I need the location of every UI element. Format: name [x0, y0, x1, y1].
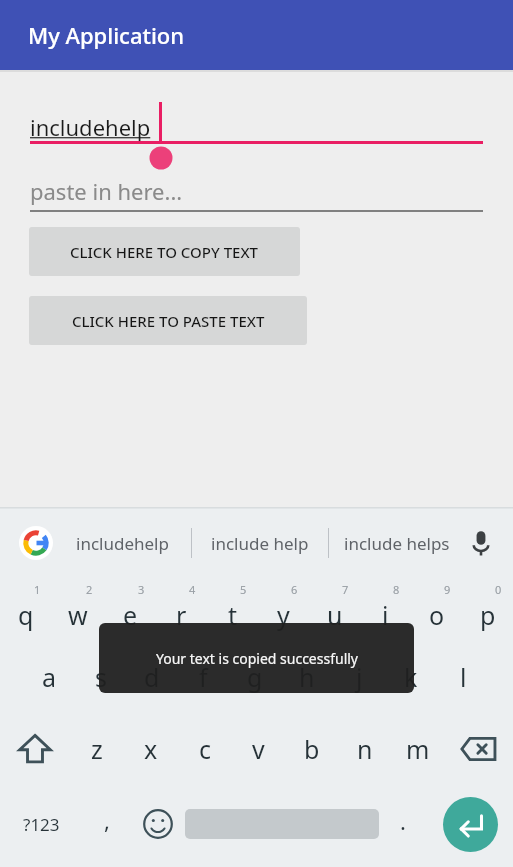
button[interactable]: 1	[0, 579, 52, 641]
button[interactable]: Emoji	[131, 785, 185, 863]
button[interactable]: c	[178, 713, 232, 785]
button[interactable]: .	[379, 785, 427, 863]
button[interactable]: 5	[207, 579, 258, 641]
button[interactable]: f	[177, 641, 229, 713]
button[interactable]: 9	[411, 579, 462, 641]
staticText: f	[199, 660, 208, 694]
staticText: ?123	[23, 813, 60, 836]
button[interactable]: Enter	[427, 785, 513, 863]
button[interactable]: j	[333, 641, 385, 713]
staticText: r	[176, 598, 187, 632]
staticText: CLICK HERE TO PASTE TEXT	[72, 311, 265, 331]
button[interactable]: g	[229, 641, 281, 713]
button[interactable]: d	[126, 641, 177, 713]
staticText: h	[299, 660, 315, 694]
staticText: includehelp	[30, 112, 151, 142]
staticText: includehelp	[76, 532, 169, 555]
button[interactable]: ,	[83, 785, 131, 863]
staticText: My Application	[28, 20, 185, 50]
staticText: j	[356, 660, 363, 694]
staticText: l	[460, 660, 467, 694]
button[interactable]: 8	[360, 579, 411, 641]
button[interactable]: ?123	[0, 785, 83, 863]
staticText: 9	[444, 582, 451, 597]
button[interactable]: Google	[18, 525, 54, 561]
button[interactable]: 7	[309, 579, 360, 641]
staticText: x	[144, 732, 158, 766]
staticText: m	[406, 732, 430, 766]
staticText: 7	[342, 582, 349, 597]
staticText: Your text is copied successfully	[156, 649, 358, 668]
button[interactable]: b	[285, 713, 338, 785]
staticText: d	[144, 660, 160, 694]
staticText: 4	[189, 582, 196, 597]
button[interactable]: Shift	[0, 713, 70, 785]
button[interactable]: k	[385, 641, 437, 713]
staticText: paste in here...	[30, 176, 183, 206]
staticText: .	[400, 806, 406, 836]
button[interactable]: CLICK HERE TO PASTE TEXT	[29, 296, 307, 345]
staticText: 1	[34, 582, 41, 597]
staticText: 5	[240, 582, 247, 597]
button[interactable]: l	[437, 641, 489, 713]
staticText: o	[429, 598, 445, 632]
staticText: i	[382, 598, 389, 632]
button[interactable]: 2	[52, 579, 104, 641]
button[interactable]: include helps	[329, 507, 465, 579]
button[interactable]: 3	[104, 579, 156, 641]
staticText: y	[277, 598, 290, 632]
staticText: ,	[104, 805, 110, 835]
button[interactable]: n	[338, 713, 391, 785]
button[interactable]: 6	[258, 579, 309, 641]
staticText: include help	[211, 532, 309, 555]
staticText: z	[91, 732, 103, 766]
staticText: a	[42, 660, 57, 694]
staticText: e	[123, 598, 138, 632]
button[interactable]: Backspace	[444, 713, 513, 785]
button[interactable]: include help	[192, 507, 328, 579]
staticText: 6	[291, 582, 298, 597]
staticText: include helps	[344, 532, 450, 555]
staticText: 2	[86, 582, 93, 597]
staticText: n	[357, 732, 373, 766]
button[interactable]: h	[281, 641, 333, 713]
staticText: s	[95, 660, 107, 694]
button[interactable]: CLICK HERE TO COPY TEXT	[29, 227, 300, 276]
staticText: q	[18, 598, 34, 632]
staticText: g	[247, 660, 263, 694]
button[interactable]: a	[24, 641, 75, 713]
button[interactable]: Space	[185, 785, 379, 863]
button[interactable]: x	[124, 713, 178, 785]
staticText: b	[304, 732, 320, 766]
staticText: c	[199, 732, 212, 766]
button[interactable]: 0	[462, 579, 513, 641]
button[interactable]: includehelp	[54, 507, 191, 579]
staticText: k	[404, 660, 418, 694]
staticText: CLICK HERE TO COPY TEXT	[70, 242, 259, 262]
staticText: v	[252, 732, 265, 766]
staticText: w	[68, 598, 88, 632]
button[interactable]: m	[391, 713, 444, 785]
staticText: p	[480, 598, 496, 632]
staticText: 0	[495, 582, 502, 597]
button[interactable]: 4	[156, 579, 207, 641]
staticText: 3	[138, 582, 145, 597]
staticText: t	[228, 598, 238, 632]
button[interactable]: z	[70, 713, 124, 785]
staticText: u	[327, 598, 343, 632]
staticText: 8	[393, 582, 400, 597]
button[interactable]: Voice input	[465, 527, 497, 559]
button[interactable]: s	[75, 641, 126, 713]
button[interactable]: v	[232, 713, 285, 785]
